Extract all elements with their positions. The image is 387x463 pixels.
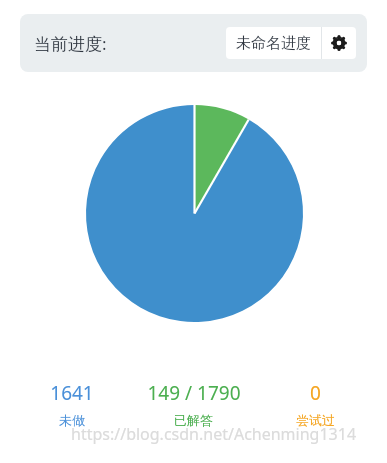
button[interactable]: 149 / 1790 [126, 380, 261, 428]
staticText: 149 / 1790 [147, 380, 241, 406]
staticText: 当前进度: [34, 32, 107, 55]
staticText: 未命名进度 [236, 34, 311, 53]
staticText: 已解答 [174, 412, 213, 428]
staticText: 尝试过 [296, 412, 335, 428]
staticText: 1641 [50, 380, 94, 406]
staticText: 0 [310, 380, 321, 406]
button[interactable]: 1641 [18, 380, 126, 428]
staticText: https://blog.csdn.net/Achenming1314 [71, 423, 357, 445]
button[interactable]: 未命名进度 [226, 27, 321, 59]
button[interactable]: 0 [261, 380, 369, 428]
button[interactable]: Settings [322, 27, 356, 59]
staticText: 未做 [59, 412, 85, 428]
